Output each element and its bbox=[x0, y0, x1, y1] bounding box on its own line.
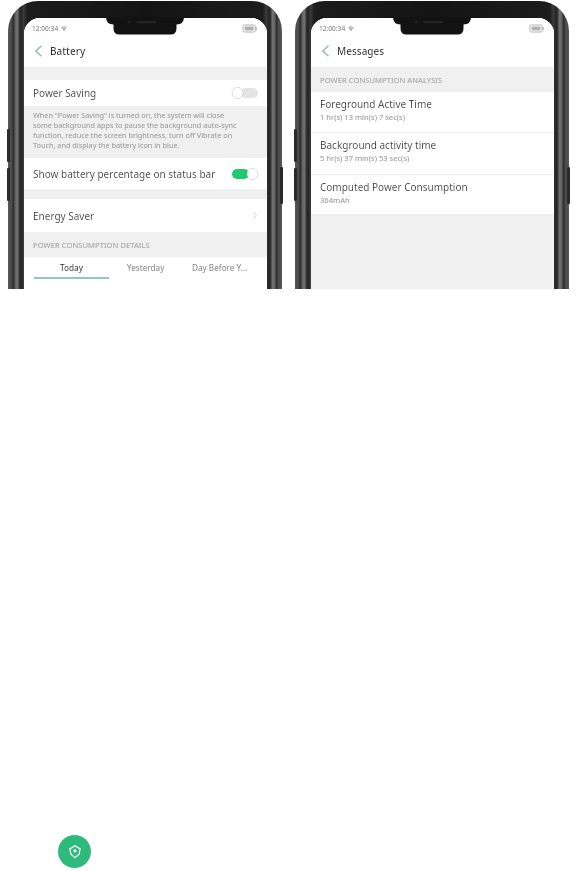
button[interactable]: Switch off bbox=[232, 86, 258, 100]
staticText: Messages bbox=[337, 44, 385, 58]
staticText: POWER CONSUMPTION DETAILS bbox=[33, 240, 150, 250]
button[interactable]: Back bbox=[318, 44, 332, 58]
button[interactable]: Brand logo bbox=[58, 835, 91, 868]
staticText: Yesterday bbox=[127, 262, 165, 273]
staticText: Power Saving bbox=[33, 86, 97, 100]
staticText: Energy Saver bbox=[33, 209, 95, 223]
staticText: Foreground Active Time bbox=[320, 97, 432, 111]
staticText: 12:00:34 bbox=[32, 24, 59, 33]
button[interactable]: Yesterday bbox=[109, 257, 183, 281]
staticText: 364mAh bbox=[320, 195, 350, 205]
button[interactable]: Computed Power Consumption bbox=[311, 175, 554, 214]
staticText: 5 hr(s) 37 min(s) 53 sec(s) bbox=[320, 153, 410, 163]
button[interactable]: Power Saving bbox=[24, 80, 267, 106]
staticText: Battery bbox=[50, 44, 86, 58]
button[interactable]: Back bbox=[31, 44, 45, 58]
button[interactable]: Day Before Y... bbox=[183, 257, 257, 281]
staticText: 1 hr(s) 13 min(s) 7 sec(s) bbox=[320, 112, 405, 122]
button[interactable]: Show battery percentage on status bar bbox=[24, 158, 267, 189]
staticText: Background activity time bbox=[320, 138, 437, 152]
staticText: 12:00:34 bbox=[319, 24, 346, 33]
button[interactable]: Switch on bbox=[232, 167, 258, 181]
staticText: Today bbox=[60, 262, 84, 273]
staticText: POWER CONSUMPTION ANALYSIS bbox=[320, 75, 443, 85]
staticText: Show battery percentage on status bar bbox=[33, 167, 216, 181]
button[interactable]: Foreground Active Time bbox=[311, 92, 554, 132]
staticText: Day Before Y... bbox=[192, 262, 248, 273]
button[interactable]: Background activity time bbox=[311, 133, 554, 174]
staticText: Computed Power Consumption bbox=[320, 180, 468, 194]
button[interactable]: Energy Saver bbox=[24, 199, 267, 232]
button[interactable]: Today bbox=[34, 257, 109, 281]
staticText: When "Power Saving" is turned on, the sy… bbox=[33, 110, 243, 150]
